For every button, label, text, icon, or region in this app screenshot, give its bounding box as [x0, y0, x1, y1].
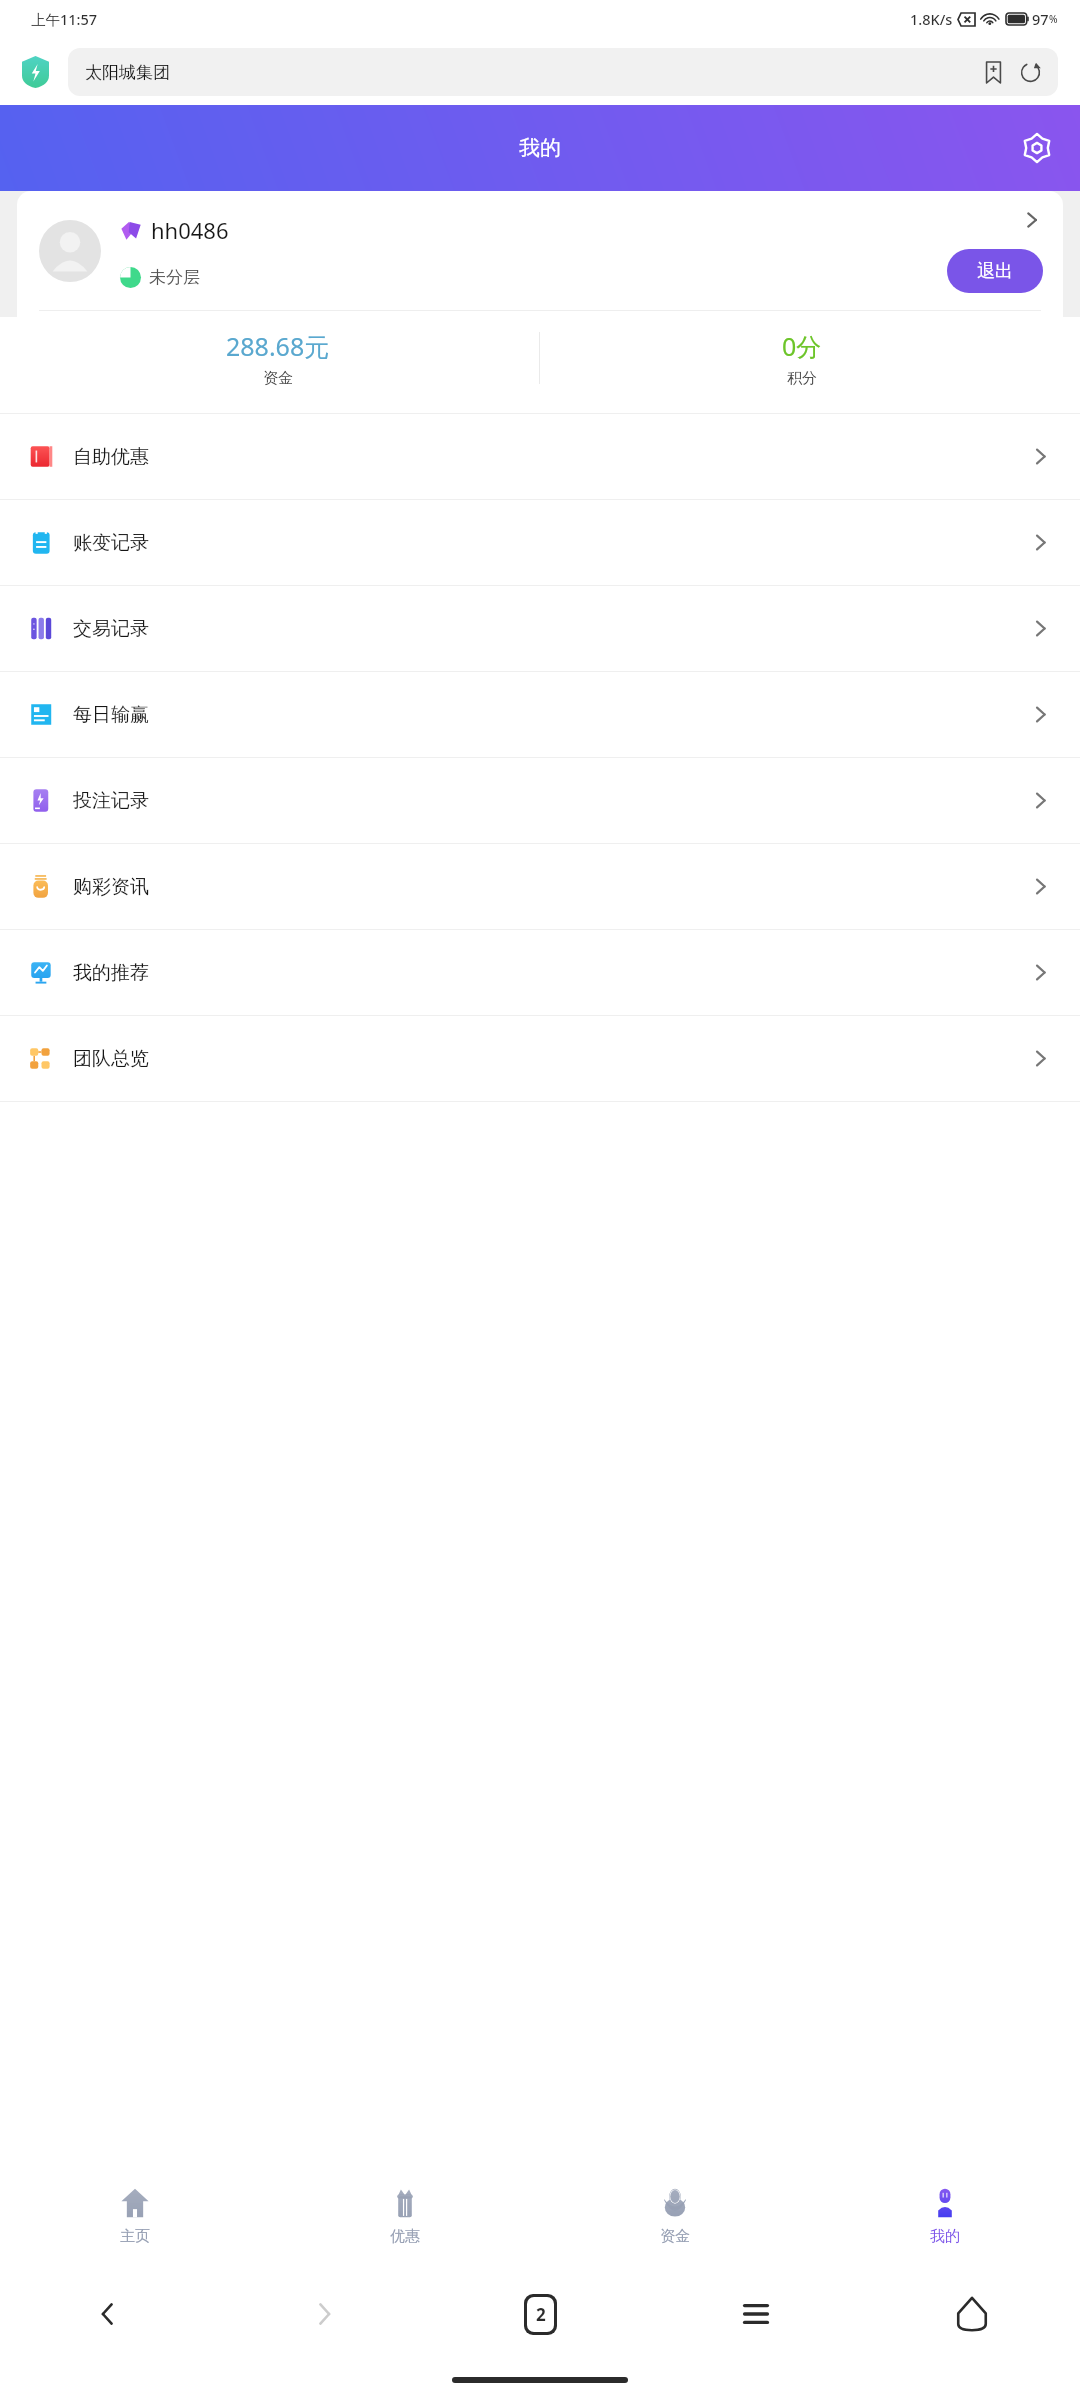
staticText: 交易记录 — [73, 617, 1029, 641]
staticText: 资金 — [263, 369, 293, 388]
button[interactable]: 我的 — [810, 2163, 1080, 2268]
button[interactable]: 额度转换 — [540, 317, 810, 413]
button[interactable]: 团队总览 — [0, 1016, 1080, 1101]
button[interactable]: 资金 — [540, 2163, 810, 2268]
staticText: 积分 — [787, 369, 817, 388]
staticText: 上午11:57 — [31, 9, 98, 29]
button[interactable]: 每日输赢 — [0, 672, 1080, 757]
staticText: 优惠 — [390, 2227, 420, 2246]
staticText: 资金 — [660, 2227, 690, 2246]
button[interactable]: 购彩资讯 — [0, 844, 1080, 929]
staticText: 自助优惠 — [73, 445, 1029, 469]
button[interactable]: Back — [0, 2268, 216, 2360]
button[interactable]: 存款 — [0, 317, 270, 413]
button[interactable]: 账变记录 — [0, 500, 1080, 585]
staticText: 退出 — [977, 260, 1013, 283]
button[interactable]: Tabs — [432, 2268, 648, 2360]
button[interactable]: 提款 — [270, 317, 540, 413]
button[interactable]: 主页 — [0, 2163, 270, 2268]
staticText: 2 — [536, 2303, 546, 2326]
staticText: % — [1049, 12, 1058, 26]
button[interactable]: 我的推荐 — [0, 930, 1080, 1015]
staticText: 0分 — [782, 329, 822, 363]
staticText: hh0486 — [151, 215, 229, 245]
button[interactable]: Settings — [1022, 133, 1052, 163]
button[interactable]: Refresh — [1020, 62, 1041, 83]
button[interactable]: Menu — [648, 2268, 864, 2360]
staticText: 太阳城集团 — [85, 62, 983, 83]
staticText: 团队总览 — [73, 1047, 1029, 1071]
staticText: 主页 — [120, 2227, 150, 2246]
button[interactable]: 自助优惠 — [0, 414, 1080, 499]
button[interactable]: 优惠 — [270, 2163, 540, 2268]
staticText: 投注记录 — [73, 789, 1029, 813]
staticText: 账变记录 — [73, 531, 1029, 555]
button[interactable]: 太阳城集团 — [68, 48, 1058, 96]
button[interactable]: 投注记录 — [0, 758, 1080, 843]
staticText: 每日输赢 — [73, 703, 1029, 727]
staticText: 288.68元 — [226, 329, 330, 363]
staticText: 我的 — [519, 135, 561, 161]
staticText: 我的 — [930, 2227, 960, 2246]
staticText: 我的推荐 — [73, 961, 1029, 985]
staticText: 未分层 — [149, 267, 200, 288]
button[interactable]: 交易记录 — [0, 586, 1080, 671]
button[interactable]: 银行卡 — [810, 317, 1080, 413]
button[interactable]: Bookmark — [983, 62, 1004, 83]
staticText: 1.8K/s — [910, 9, 953, 29]
staticText: 97 — [1032, 9, 1049, 29]
button[interactable]: 退出 — [947, 249, 1043, 293]
staticText: 购彩资讯 — [73, 875, 1029, 899]
button[interactable]: Home — [864, 2268, 1080, 2360]
button[interactable]: hh0486 — [17, 191, 1063, 405]
